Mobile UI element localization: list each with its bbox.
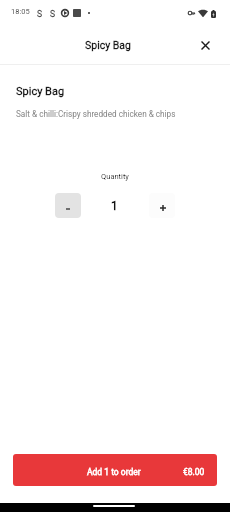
button[interactable]: Increase quantity (149, 193, 175, 218)
staticText: S (50, 9, 56, 19)
button[interactable]: Add 1 to order (13, 454, 217, 486)
staticText: €8.00 (183, 467, 205, 477)
staticText: Add 1 to order (87, 467, 141, 477)
button[interactable]: Close (192, 32, 220, 60)
staticText: S (37, 9, 43, 19)
staticText: Spicy Bag (85, 39, 131, 51)
staticText: Salt & chilli:Crispy shredded chicken & … (16, 109, 176, 119)
staticText: 18:05 (11, 7, 30, 16)
button[interactable]: Decrease quantity (55, 193, 81, 218)
staticText: 1 (111, 199, 118, 213)
staticText: Quantity (0, 172, 230, 181)
staticText: Spicy Bag (16, 85, 65, 98)
